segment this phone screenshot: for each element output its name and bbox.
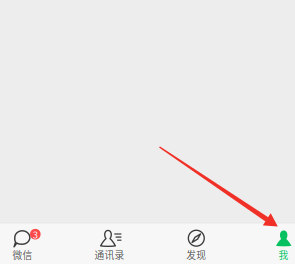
button[interactable]: 发现 [159, 223, 233, 264]
staticText: 微信 [12, 248, 32, 262]
button[interactable]: 通讯录 [72, 223, 146, 264]
staticText: 通讯录 [94, 248, 124, 262]
staticText: 发现 [186, 248, 206, 262]
staticText: 我 [279, 248, 289, 262]
button[interactable]: 我 [247, 223, 295, 264]
button[interactable]: 微信 [0, 223, 59, 264]
staticText: 3 [33, 227, 38, 241]
